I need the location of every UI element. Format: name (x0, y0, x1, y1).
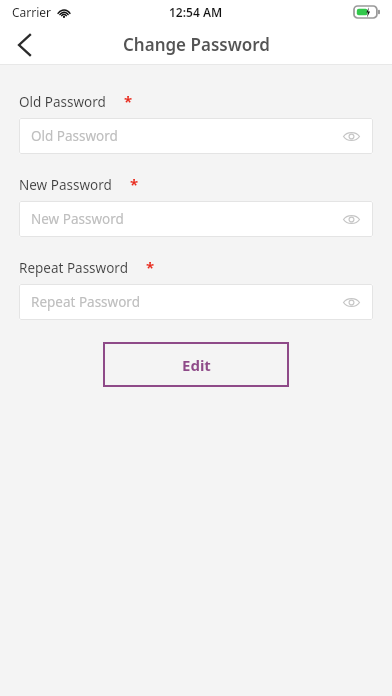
staticText: 12:54 AM (169, 4, 223, 20)
button[interactable]: Edit (103, 342, 289, 387)
button[interactable]: Back (0, 24, 48, 65)
staticText: New Password (31, 210, 124, 228)
button[interactable]: New Password (19, 201, 373, 237)
button[interactable]: Show password (338, 206, 364, 232)
staticText: Repeat Password (19, 259, 128, 277)
button[interactable]: Old Password (19, 118, 373, 154)
staticText: Carrier (12, 4, 52, 20)
staticText: * (146, 257, 155, 277)
staticText: Edit (182, 355, 211, 375)
staticText: Repeat Password (31, 293, 140, 311)
staticText: * (130, 174, 139, 194)
button[interactable]: Repeat Password (19, 284, 373, 320)
button[interactable]: Show password (338, 289, 364, 315)
staticText: * (124, 91, 133, 111)
staticText: New Password (19, 176, 112, 194)
staticText: Old Password (31, 127, 118, 145)
button[interactable]: Show password (338, 123, 364, 149)
staticText: Old Password (19, 93, 106, 111)
staticText: Change Password (123, 33, 270, 56)
